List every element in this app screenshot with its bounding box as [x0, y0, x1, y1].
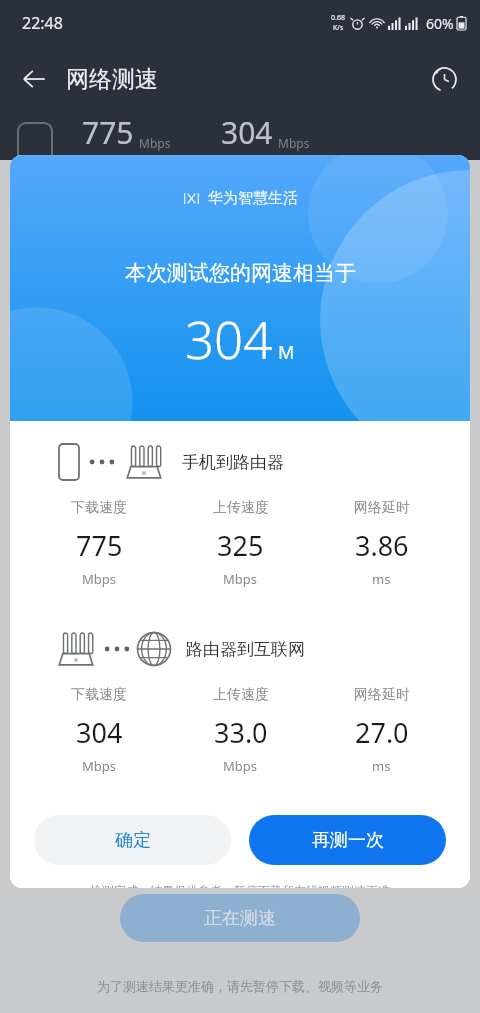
staticText: 3.86 — [355, 527, 409, 564]
staticText: 33.0 — [214, 714, 268, 751]
staticText: 27.0 — [355, 714, 409, 751]
staticText: 华为智慧生活 — [208, 189, 298, 208]
staticText: 网络延时 — [354, 499, 410, 517]
staticText: 60% — [426, 14, 454, 33]
staticText: 上传速度 — [213, 499, 269, 517]
staticText: 检测完成，结果仅供参考，暂停下载和在线视频测速更准 — [10, 883, 470, 888]
staticText: Mbps — [139, 135, 171, 151]
staticText: 手机到路由器 — [182, 452, 284, 473]
staticText: Mbps — [82, 757, 117, 775]
staticText: 775 — [76, 527, 123, 564]
staticText: 0.68 — [331, 13, 345, 23]
staticText: 网络测速 — [66, 65, 158, 94]
staticText: Mbps — [82, 570, 117, 588]
button[interactable]: 正在测速 — [120, 894, 360, 942]
staticText: 325 — [217, 527, 264, 564]
staticText: 本次测试您的网速相当于 — [125, 260, 356, 286]
staticText: Mbps — [223, 757, 258, 775]
button[interactable]: 再测一次 — [249, 815, 446, 865]
button[interactable]: 确定 — [34, 815, 231, 865]
staticText: 304 — [185, 304, 273, 373]
staticText: 路由器到互联网 — [186, 639, 305, 660]
staticText: ms — [372, 570, 391, 588]
staticText: 网络延时 — [354, 686, 410, 704]
staticText: 再测一次 — [312, 829, 384, 852]
staticText: M — [278, 340, 295, 365]
staticText: 304 — [221, 112, 273, 153]
staticText: ms — [372, 757, 391, 775]
staticText: 下载速度 — [71, 686, 127, 704]
staticText: 775 — [82, 112, 134, 153]
staticText: Mbps — [223, 570, 258, 588]
staticText: 正在测速 — [204, 907, 276, 930]
staticText: 22:48 — [22, 12, 63, 34]
button[interactable]: Back — [12, 57, 56, 101]
staticText: K/s — [333, 23, 344, 33]
staticText: 为了测速结果更准确，请先暂停下载、视频等业务 — [97, 978, 383, 994]
staticText: 确定 — [115, 829, 151, 852]
button[interactable]: History — [422, 57, 466, 101]
staticText: 下载速度 — [71, 499, 127, 517]
staticText: 上传速度 — [213, 686, 269, 704]
staticText: Mbps — [278, 135, 310, 151]
staticText: 304 — [76, 714, 123, 751]
